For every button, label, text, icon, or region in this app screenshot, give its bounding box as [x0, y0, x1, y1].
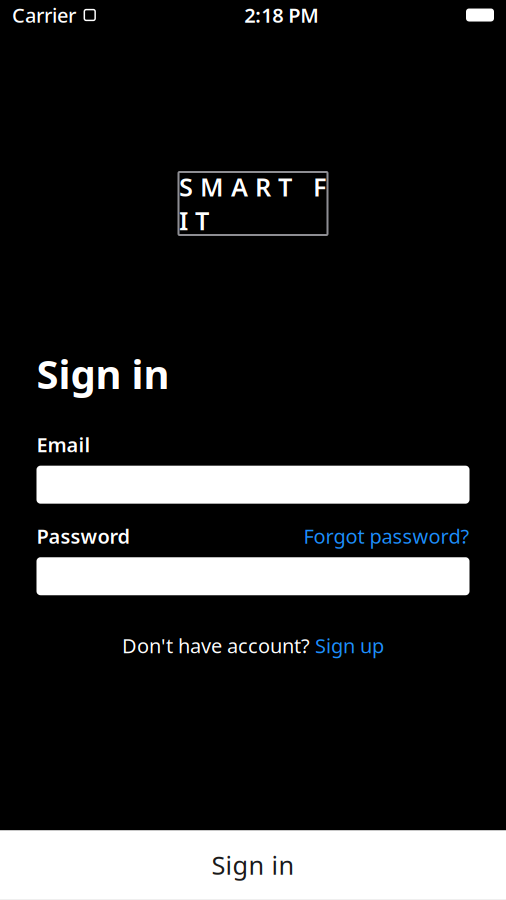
button[interactable]: Sign up	[315, 632, 384, 659]
staticText: Sign in	[36, 347, 169, 400]
staticText: Sign up	[315, 632, 384, 659]
staticText: 2:18 PM	[244, 2, 319, 28]
staticText: Password	[36, 523, 130, 549]
staticText: Carrier	[12, 2, 76, 28]
button[interactable]: Password	[36, 557, 469, 595]
staticText: Don't have account?	[122, 632, 315, 659]
staticText: Forgot password?	[303, 523, 469, 549]
button[interactable]: Email	[36, 466, 469, 504]
staticText: Sign in	[211, 848, 294, 882]
button[interactable]: Forgot password?	[303, 523, 469, 549]
button[interactable]: Sign in	[0, 830, 506, 900]
staticText: S M A R T F I T	[179, 170, 327, 237]
staticText: Email	[36, 431, 90, 458]
